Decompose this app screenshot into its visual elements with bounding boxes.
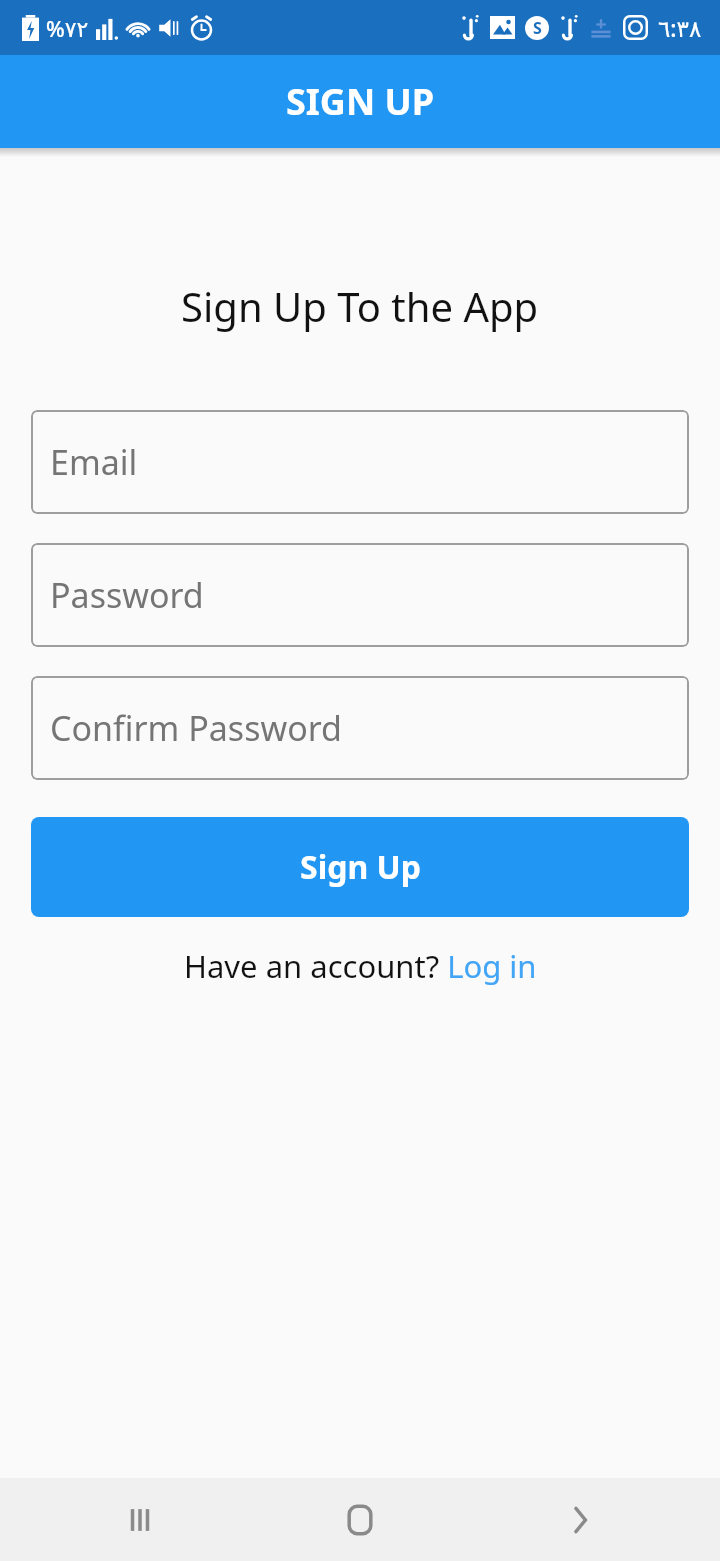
staticText: %٧٢ <box>46 13 89 43</box>
staticText: S <box>533 17 542 39</box>
staticText: ٦:٣٨ <box>658 12 702 43</box>
staticText: Password <box>50 572 204 618</box>
button[interactable]: Back <box>500 1478 660 1561</box>
button[interactable]: Password <box>31 543 689 647</box>
button[interactable]: Confirm Password <box>31 676 689 780</box>
staticText: Sign Up <box>300 845 421 889</box>
staticText: Email <box>50 439 138 485</box>
staticText: SIGN UP <box>286 77 435 126</box>
staticText: Have an account? Log in <box>184 945 537 987</box>
staticText: Sign Up To the App <box>181 279 539 333</box>
button[interactable]: Email <box>31 410 689 514</box>
staticText: Confirm Password <box>50 705 342 751</box>
button[interactable]: Home <box>280 1478 440 1561</box>
button[interactable]: Have an account? Log in <box>0 945 720 987</box>
button[interactable]: Sign Up <box>31 817 689 917</box>
button[interactable]: Recent apps <box>60 1478 220 1561</box>
